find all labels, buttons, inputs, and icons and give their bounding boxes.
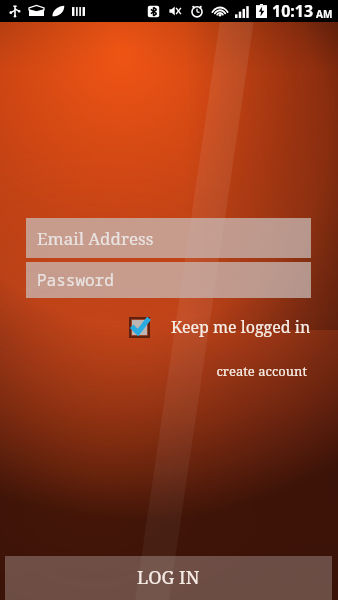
staticText: Password xyxy=(37,269,114,291)
staticText: AM xyxy=(316,7,333,21)
button[interactable]: Password xyxy=(26,262,311,298)
button[interactable]: create account xyxy=(212,358,311,384)
button[interactable]: LOG IN xyxy=(5,556,332,600)
staticText: Email Address xyxy=(37,227,154,250)
staticText: LOG IN xyxy=(137,565,200,590)
staticText: Keep me logged in xyxy=(171,316,311,338)
staticText: 10:13 xyxy=(272,0,314,22)
button[interactable]: Email Address xyxy=(26,218,311,258)
button[interactable]: Keep me logged in xyxy=(130,316,311,338)
